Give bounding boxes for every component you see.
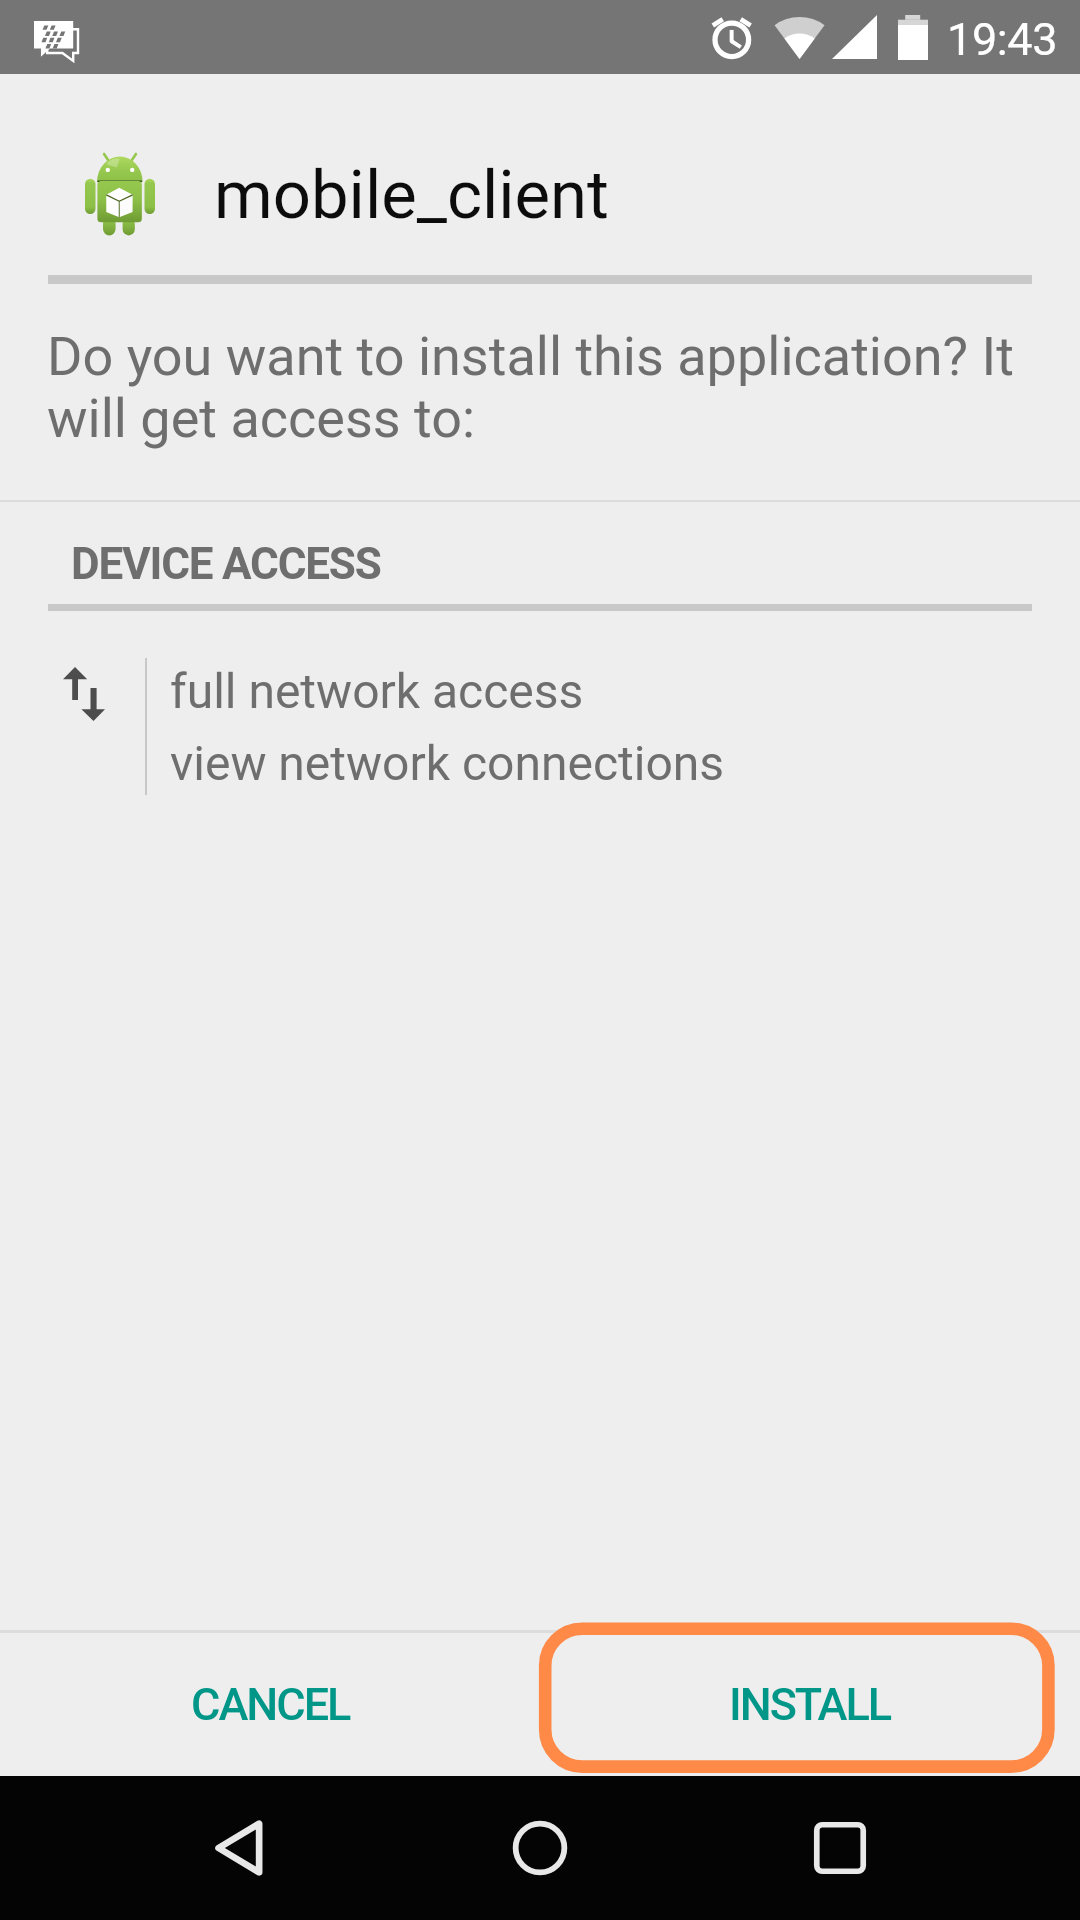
button[interactable]: CANCEL (0, 1633, 540, 1776)
button[interactable]: Recent apps (780, 1788, 900, 1908)
staticText: 19:43 (947, 13, 1058, 66)
button[interactable]: Back (180, 1788, 300, 1908)
staticText: full network access (170, 663, 584, 719)
staticText: CANCEL (191, 1678, 350, 1731)
button[interactable]: Home (480, 1788, 600, 1908)
staticText: DEVICE ACCESS (71, 538, 381, 590)
staticText: view network connections (170, 735, 725, 791)
staticText: INSTALL (729, 1678, 891, 1731)
staticText: Do you want to install this application?… (47, 326, 1080, 450)
button[interactable]: INSTALL (540, 1633, 1080, 1776)
staticText: mobile_client (214, 156, 610, 235)
